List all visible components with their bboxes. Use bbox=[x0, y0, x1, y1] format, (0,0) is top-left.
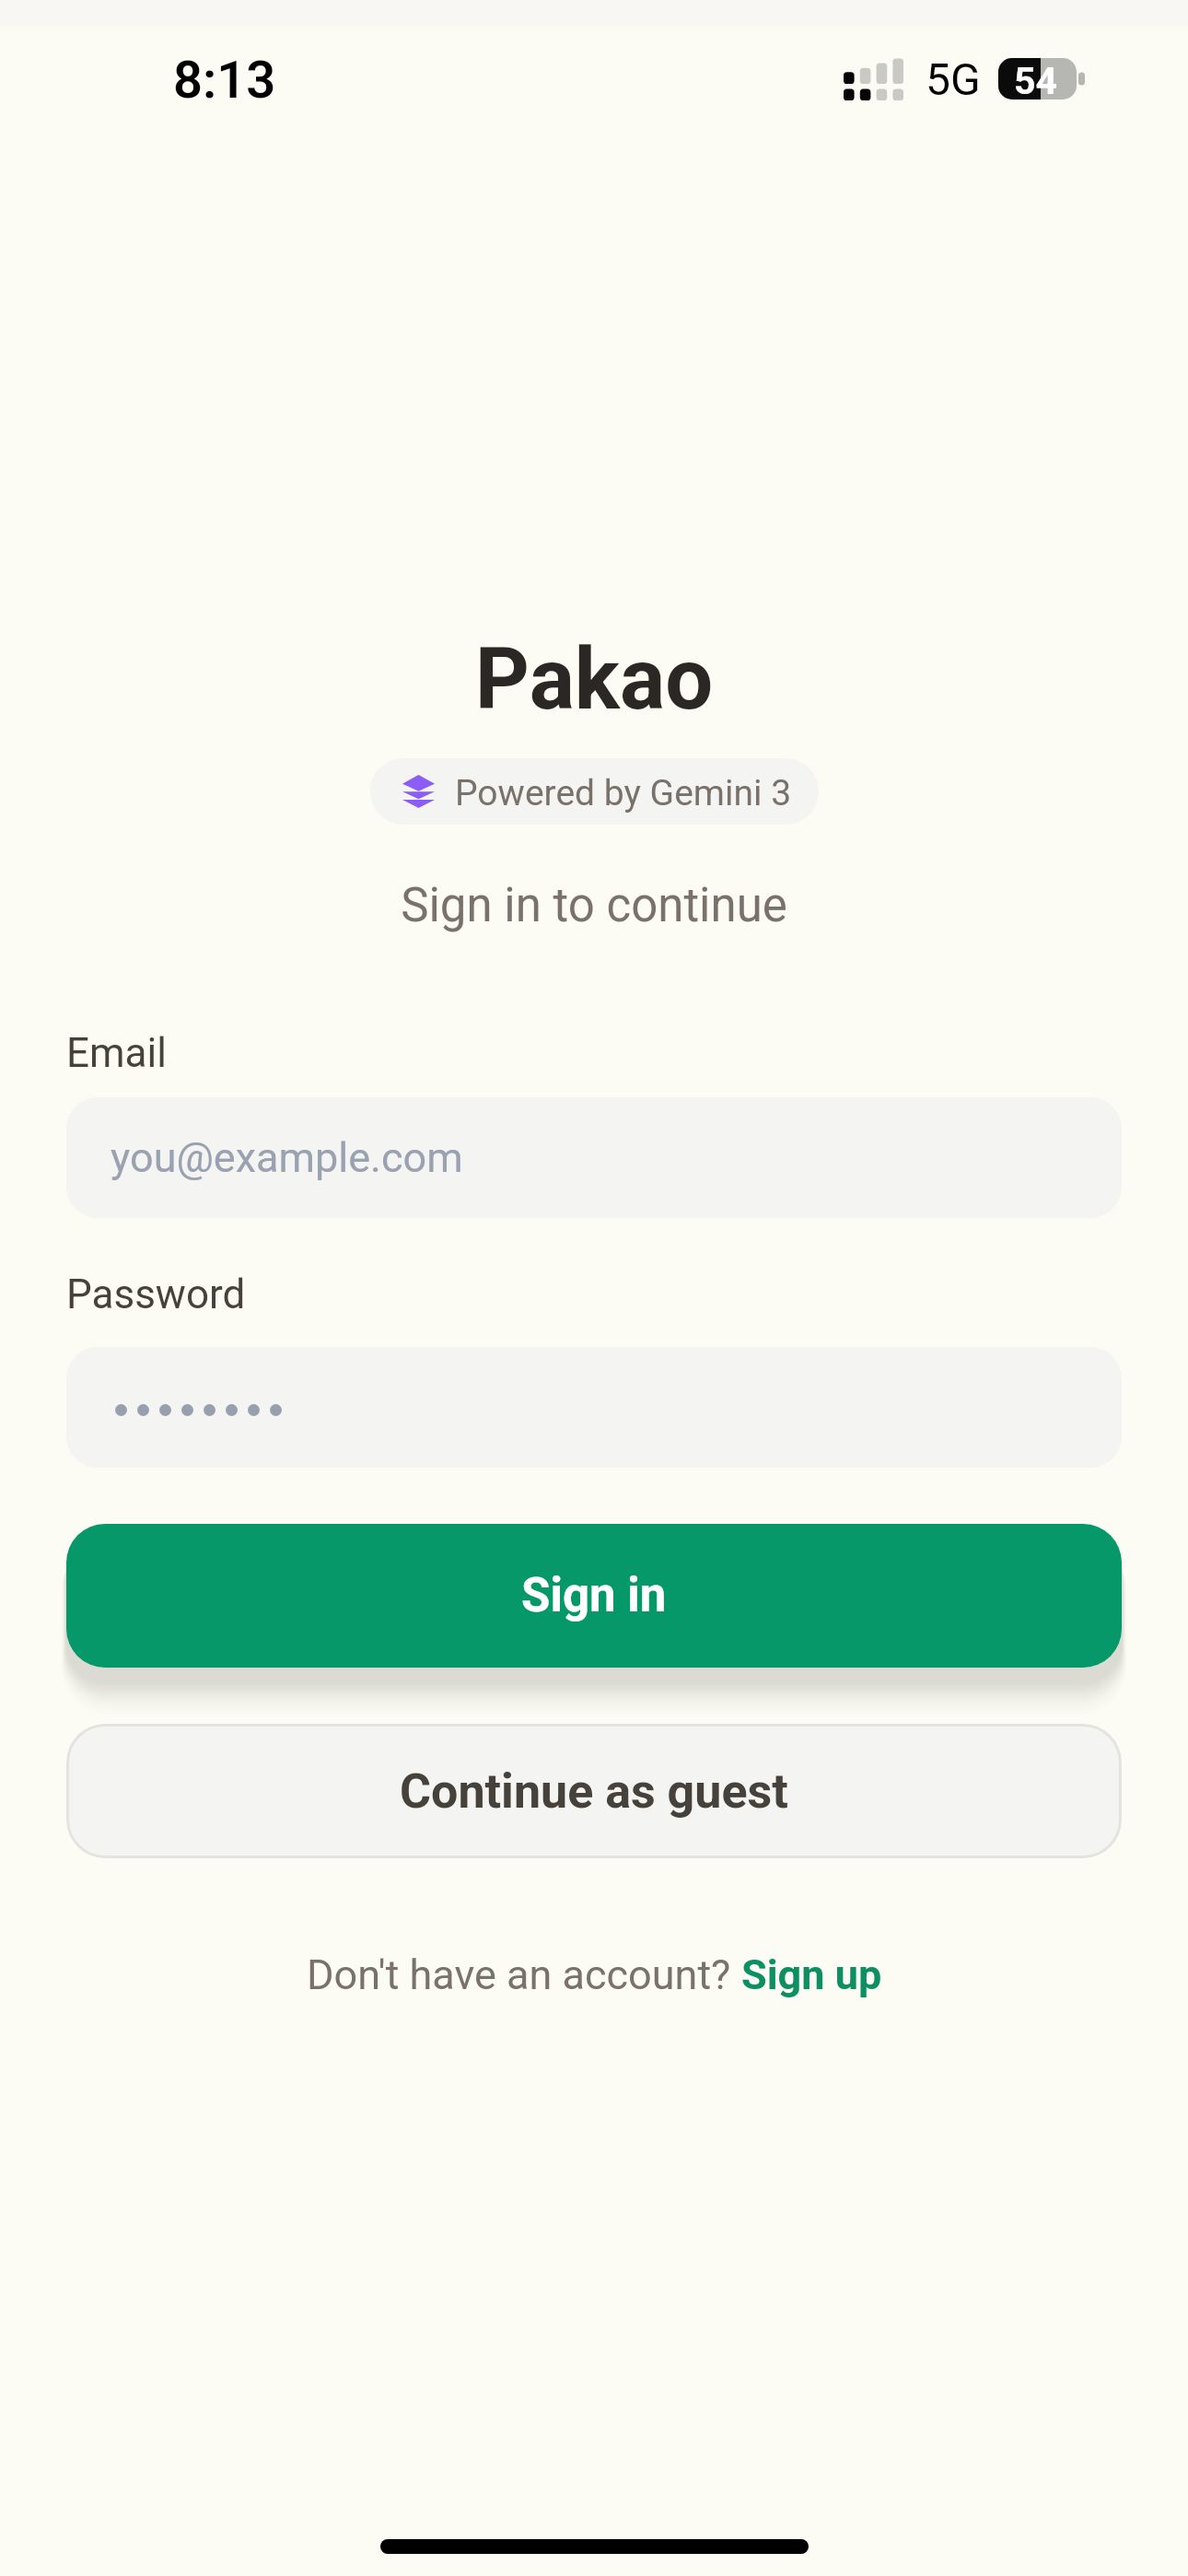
staticText: Powered by Gemini 3 bbox=[455, 772, 792, 814]
staticText: you@example.com bbox=[111, 1133, 463, 1182]
button[interactable]: Continue as guest bbox=[66, 1724, 1122, 1858]
button[interactable]: Sign up bbox=[741, 1950, 882, 1999]
staticText: Email bbox=[66, 1029, 167, 1077]
staticText: Pakao bbox=[0, 630, 1188, 730]
button[interactable]: you@example.com bbox=[66, 1097, 1122, 1218]
staticText: Continue as guest bbox=[400, 1763, 788, 1820]
other: Battery 54 percent bbox=[998, 58, 1085, 100]
staticText: Sign in bbox=[521, 1568, 667, 1623]
button[interactable]: Gemini bbox=[370, 758, 819, 825]
staticText: Sign in to continue bbox=[0, 878, 1188, 933]
other: Cellular signal bbox=[844, 58, 903, 100]
staticText: 8:13 bbox=[173, 50, 276, 111]
button[interactable] bbox=[66, 1347, 1122, 1468]
staticText: 54 bbox=[1014, 59, 1058, 101]
button[interactable]: Sign in bbox=[66, 1524, 1122, 1668]
staticText: Sign up bbox=[741, 1950, 882, 1999]
staticText: 5G bbox=[926, 53, 981, 105]
staticText: Password bbox=[66, 1270, 246, 1318]
staticText: Don't have an account? bbox=[307, 1950, 741, 1999]
other: Gemini bbox=[402, 775, 435, 808]
